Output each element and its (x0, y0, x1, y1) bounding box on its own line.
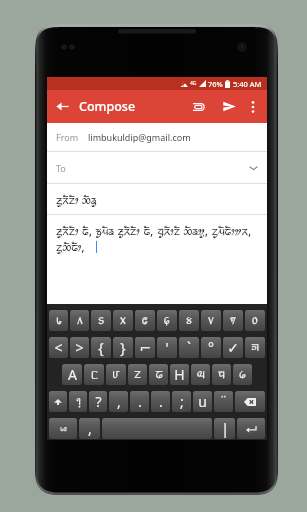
staticText: | (221, 419, 229, 438)
button[interactable]: ᥀ (233, 364, 252, 385)
staticText: ᤁ (134, 367, 141, 382)
staticText: ᤈ (251, 340, 259, 355)
button[interactable]: ᥈ (70, 310, 89, 331)
button[interactable]: ᥄ (69, 391, 87, 412)
staticText: ᥇ (56, 313, 62, 328)
staticText: ` (187, 338, 191, 357)
staticText: ᥇᥋ (60, 425, 67, 433)
staticText: ᥴ (91, 368, 98, 382)
button[interactable]: ᥊ (113, 310, 133, 331)
button[interactable]: ' (157, 337, 177, 358)
button[interactable]: } (113, 337, 133, 358)
staticText: ᤙ (112, 367, 120, 382)
button[interactable] (237, 418, 265, 439)
button[interactable]: ⌐ (135, 337, 155, 358)
button[interactable]: ᥆ (245, 310, 265, 331)
staticText: ? (95, 392, 102, 411)
staticText: ✓ (227, 340, 239, 356)
staticText: ; (180, 392, 184, 411)
staticText: ᥏ (230, 313, 236, 328)
staticText: A (68, 365, 77, 384)
button[interactable]: ᥍ (179, 310, 199, 331)
button[interactable]: ᤏᤢᤖᤠᤁᤥ ᤒᤠ, ᤃᤢᤘᤠᤕ ᤏᤢᤖᤠᤁᤥ ᤒᤠ, ᤔᤢᤖᤥᤁᤠ ᤑᤠᤕᤤᤢ… (47, 215, 267, 304)
button[interactable]: ᤓ (191, 364, 210, 385)
staticText: From (56, 131, 79, 143)
button[interactable]: H (170, 364, 189, 385)
button[interactable]: ᥇᥋ (49, 418, 77, 439)
staticText: ᥌ (164, 313, 170, 328)
staticText: < (54, 338, 63, 357)
button[interactable]: Back (47, 90, 77, 123)
staticText: { (98, 338, 104, 357)
button[interactable]: ? (89, 391, 107, 412)
staticText: u (198, 392, 207, 411)
button[interactable]: More options (242, 90, 264, 123)
button[interactable]: , (109, 391, 128, 412)
staticText: } (120, 338, 126, 357)
staticText: ᥋ (142, 313, 148, 328)
button[interactable]: ° (201, 337, 221, 358)
staticText: ᤏᤢᤖᤠᤁᤥ ᤒᤠ, ᤃᤢᤘᤠᤕ ᤏᤢᤖᤠᤁᤥ ᤒᤠ, ᤔᤢᤖᤥᤁᤠ ᤑᤠᤕᤤᤢ… (56, 221, 260, 255)
staticText: 76% (208, 79, 223, 89)
button[interactable]: ᤁ (128, 364, 147, 385)
staticText: ¨ (219, 392, 228, 411)
button[interactable]: ᤈ (245, 337, 265, 358)
staticText: > (75, 338, 84, 357)
button[interactable]: To (47, 152, 267, 183)
staticText: limbukuldip@gmail.com (88, 131, 191, 143)
staticText: . (159, 392, 163, 411)
button[interactable] (235, 391, 265, 412)
button[interactable]: ✓ (223, 337, 243, 358)
button[interactable]: ; (172, 391, 191, 412)
staticText: ᥊ (120, 313, 126, 328)
button[interactable]: ᤒ (149, 364, 168, 385)
staticText: ' (165, 338, 169, 357)
button[interactable]: A (62, 364, 82, 385)
button[interactable]: . (130, 391, 149, 412)
button[interactable]: ` (179, 337, 199, 358)
button[interactable]: , (79, 418, 100, 439)
staticText: ᤏᤢᤖᤠᤁᤥ ᤑᤠᤕᤢ (56, 190, 97, 208)
button[interactable]: u (193, 391, 212, 412)
staticText: Compose (79, 98, 136, 115)
staticText: 5:40 AM (233, 79, 262, 89)
staticText: ᤒ (155, 367, 163, 382)
staticText: To (56, 162, 66, 174)
button[interactable]: ᥉ (91, 310, 111, 331)
button[interactable]: ¨ (214, 391, 233, 412)
button[interactable]: . (151, 391, 170, 412)
button[interactable]: ᥋ (135, 310, 155, 331)
staticText: ᥍ (186, 313, 192, 328)
button[interactable]: ᥴ (84, 364, 104, 385)
staticText: , (88, 419, 92, 438)
button[interactable]: | (214, 418, 235, 439)
button[interactable]: ᥇ (49, 310, 68, 331)
button[interactable]: ᤙ (106, 364, 126, 385)
staticText: ᥉ (98, 313, 104, 328)
button[interactable] (49, 391, 67, 412)
button[interactable]: ᥏ (223, 310, 243, 331)
button[interactable]: ᤄ (212, 364, 231, 385)
staticText: , (117, 392, 121, 411)
staticText: . (138, 392, 142, 411)
staticText: ᥈ (77, 313, 83, 328)
button[interactable]: < (49, 337, 68, 358)
button[interactable] (102, 418, 212, 439)
staticText: ᤓ (197, 367, 205, 382)
button[interactable]: ᥌ (157, 310, 177, 331)
staticText: ᥀ (239, 367, 246, 382)
staticText: 4G (190, 80, 197, 87)
staticText: ᥎ (208, 313, 214, 328)
button[interactable]: Send (217, 90, 242, 123)
staticText: ᥆ (252, 313, 258, 328)
button[interactable]: ᥎ (201, 310, 221, 331)
staticText: ᥄ (76, 394, 81, 409)
staticText: H (174, 365, 185, 384)
button[interactable]: ᤏᤢᤖᤠᤁᤥ ᤑᤠᤕᤢ (47, 184, 267, 214)
staticText: ⌐ (139, 340, 151, 356)
button[interactable]: Attach file (181, 90, 217, 123)
staticText: ᤄ (218, 367, 225, 382)
button[interactable]: From (47, 123, 267, 151)
button[interactable]: > (70, 337, 89, 358)
button[interactable]: { (91, 337, 111, 358)
